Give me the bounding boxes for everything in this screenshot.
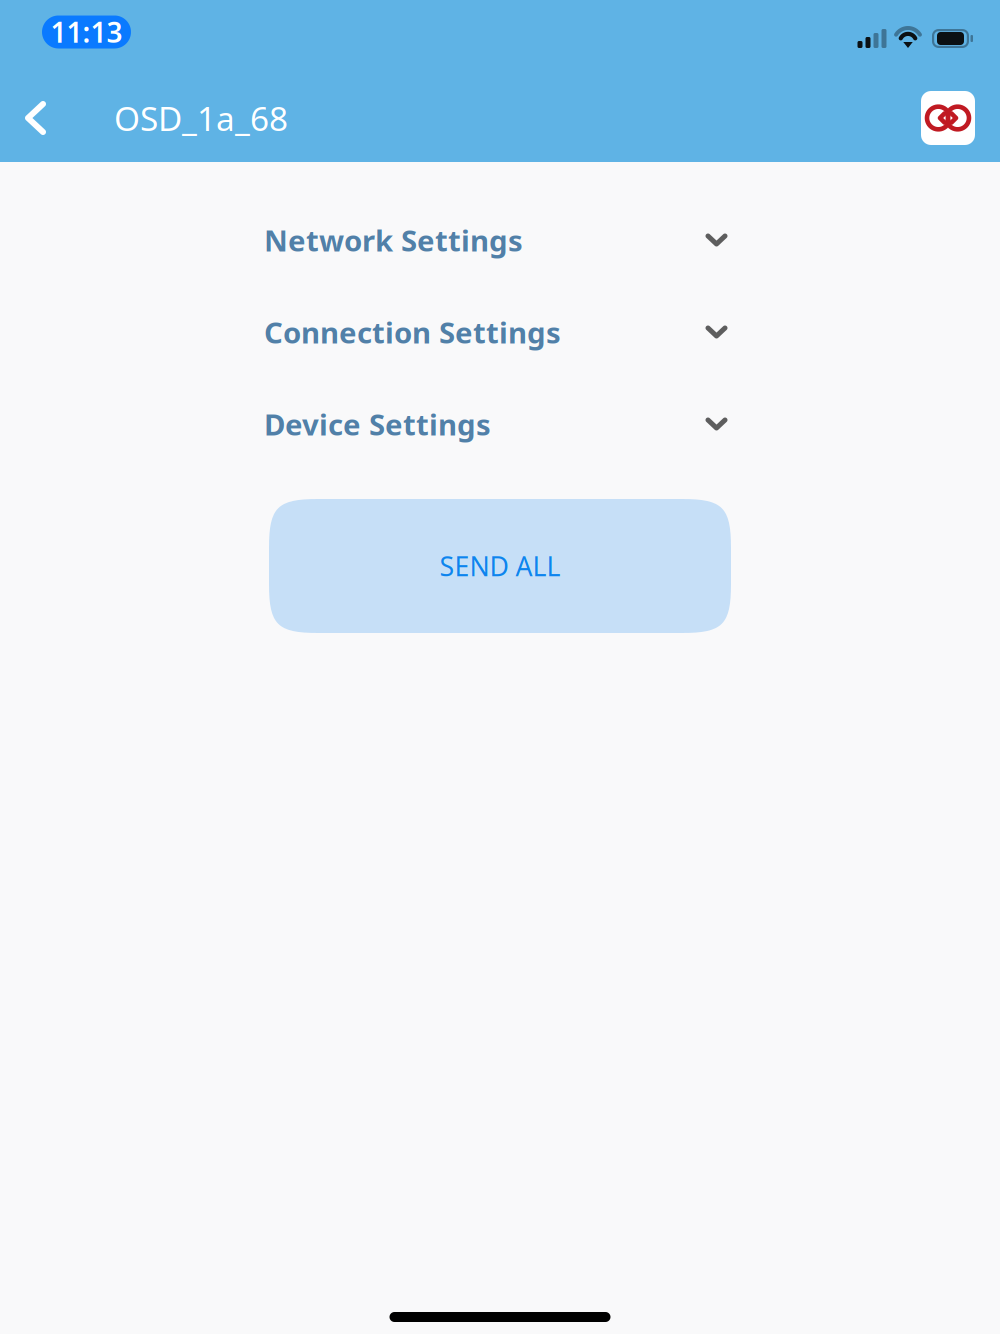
button[interactable]: Pair device	[921, 74, 1000, 162]
button[interactable]: Back	[0, 74, 114, 162]
staticText: Network Settings	[264, 220, 523, 259]
staticText: 11:13	[50, 13, 122, 51]
staticText: Device Settings	[264, 404, 491, 443]
button[interactable]: Device Settings	[264, 378, 733, 470]
button[interactable]: Network Settings	[264, 194, 733, 286]
button[interactable]: Connection Settings	[264, 286, 733, 378]
staticText: SEND ALL	[439, 548, 560, 584]
staticText: Connection Settings	[264, 312, 561, 351]
staticText: OSD_1a_68	[114, 96, 288, 140]
button[interactable]: SEND ALL	[269, 499, 731, 633]
